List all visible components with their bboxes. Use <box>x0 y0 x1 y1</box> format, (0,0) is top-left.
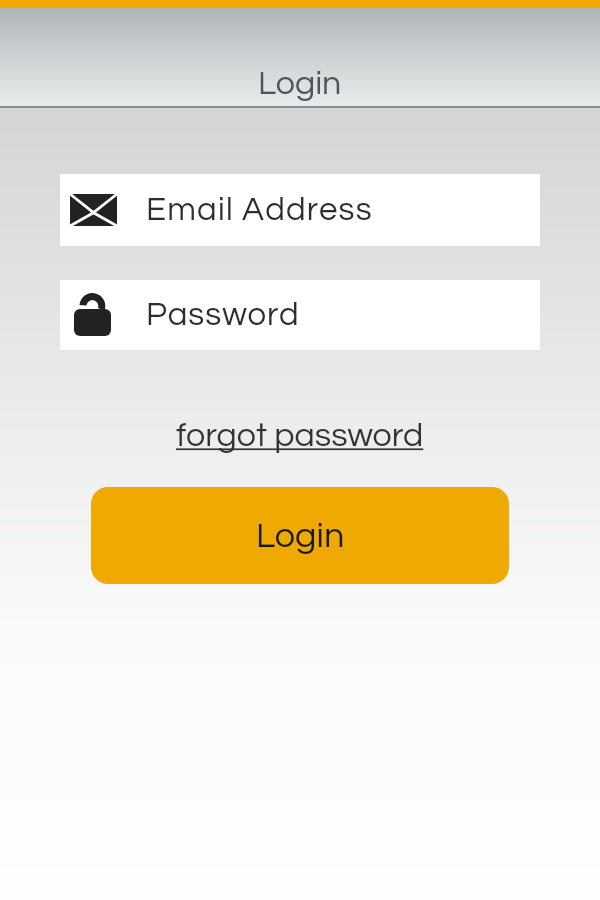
staticText: Email Address <box>146 193 373 227</box>
button[interactable]: Login <box>91 487 509 584</box>
button[interactable]: Password <box>60 280 540 350</box>
staticText: Login <box>256 517 345 554</box>
staticText: Password <box>146 298 300 332</box>
button[interactable]: Email Address <box>60 174 540 246</box>
button[interactable]: forgot password <box>176 418 424 453</box>
staticText: Login <box>258 66 342 101</box>
